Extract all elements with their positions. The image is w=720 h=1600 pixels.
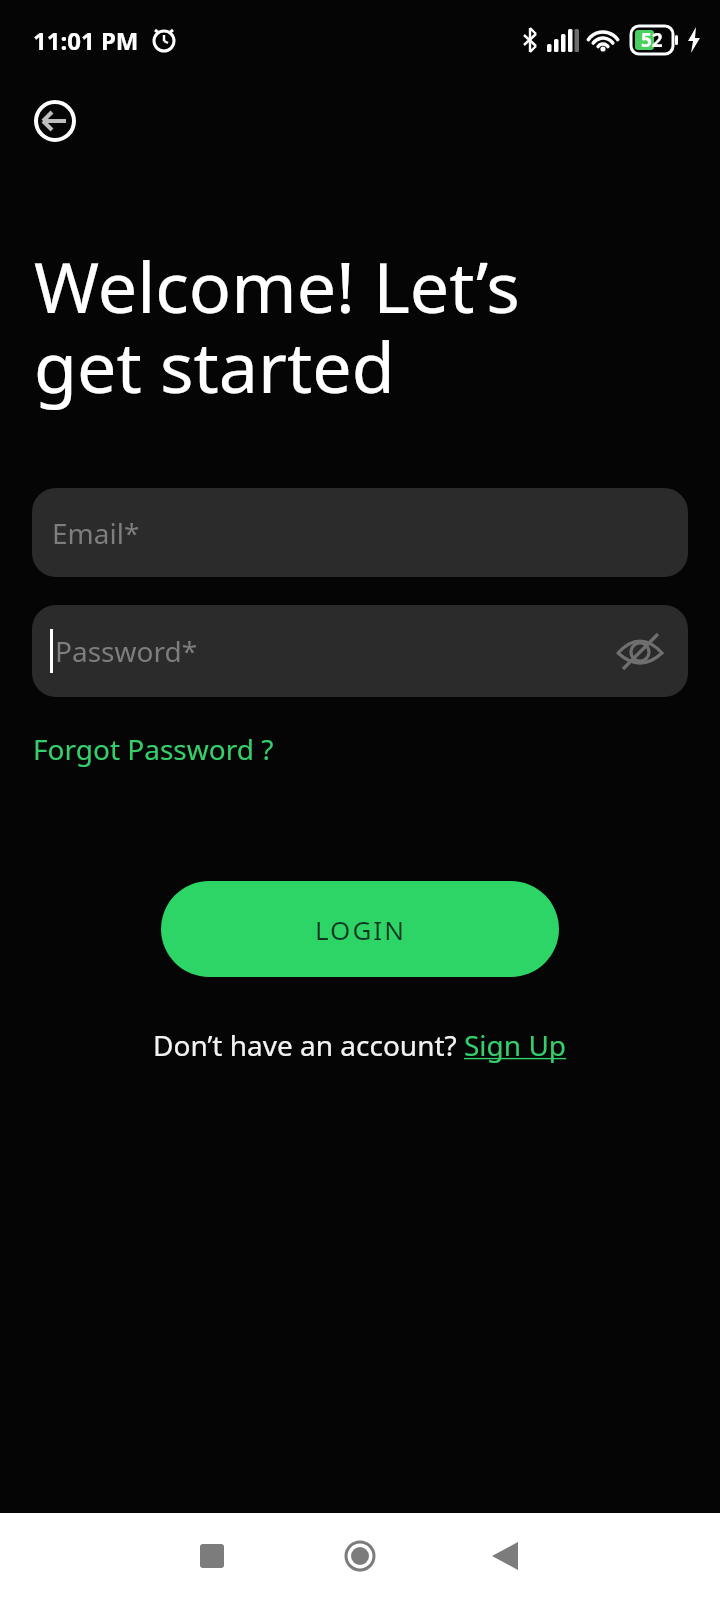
staticText: 11:01 PM	[33, 24, 139, 57]
button[interactable]: Sign Up	[464, 1026, 567, 1064]
button[interactable]	[33, 99, 77, 143]
staticText: Welcome! Let’s get started	[34, 238, 520, 413]
button[interactable]: Forgot Password ?	[33, 730, 274, 768]
staticText: Email*	[52, 514, 140, 552]
button[interactable]: Password*	[32, 605, 688, 697]
staticText: Password*	[55, 632, 198, 670]
button[interactable]: Email*	[32, 488, 688, 577]
staticText: Don’t have an account?	[153, 1026, 464, 1064]
staticText: LOGIN	[315, 912, 406, 947]
staticText: 52	[641, 27, 663, 53]
button[interactable]: LOGIN	[161, 881, 559, 977]
